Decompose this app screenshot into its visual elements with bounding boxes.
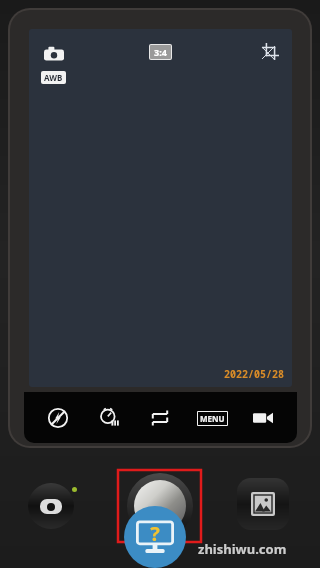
button[interactable]: Video mode [246,401,280,435]
button[interactable]: Shooting mode [41,41,67,67]
button[interactable]: Gallery [237,478,289,530]
button[interactable]: Help [124,506,186,568]
button[interactable]: Flash off [41,401,75,435]
button[interactable]: Power [28,483,74,529]
staticText: AWB [44,72,63,83]
button[interactable]: Crop [258,39,282,63]
button[interactable]: Self timer off [92,401,126,435]
staticText: zhishiwu.com [198,540,287,558]
staticText: MENU [200,413,225,424]
button[interactable]: 3:4 [149,44,172,60]
button[interactable]: Shutter [118,470,201,542]
staticText: 3:4 [154,46,167,58]
button[interactable]: Switch [143,401,177,435]
button[interactable]: MENU [195,407,229,429]
staticText: 2022/05/28 [224,367,284,381]
staticText: ? [150,520,160,547]
button[interactable]: AWB [41,71,66,84]
